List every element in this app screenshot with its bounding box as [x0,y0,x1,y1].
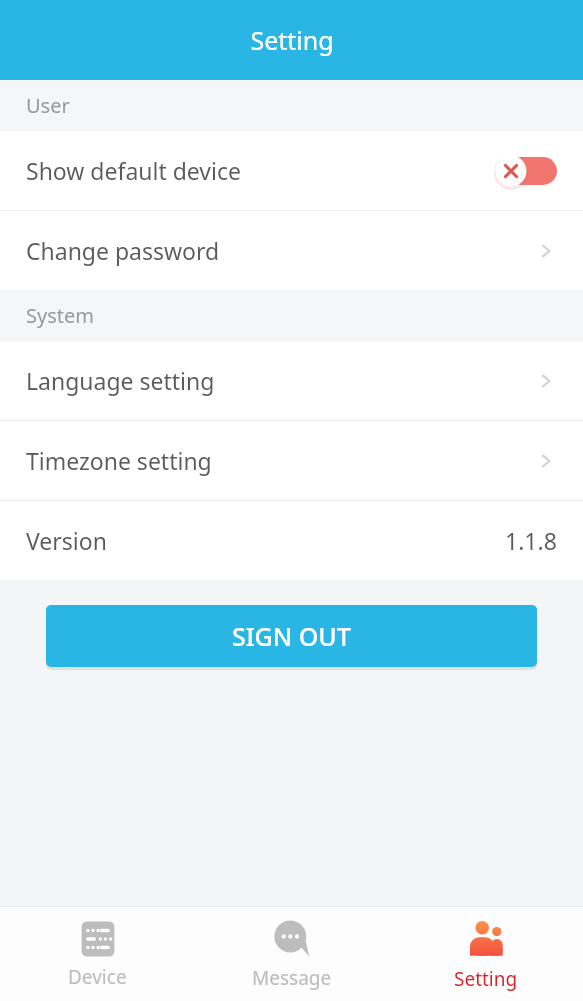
button[interactable]: SIGN OUT [46,605,537,667]
button[interactable]: Show default device toggle [493,154,557,188]
button[interactable]: Show default device [0,131,583,210]
staticText: Message [252,965,332,991]
staticText: SIGN OUT [232,619,351,653]
staticText: Timezone setting [26,445,212,476]
button[interactable]: Timezone setting [0,421,583,500]
staticText: Setting [250,23,334,57]
staticText: System [26,302,94,329]
button[interactable]: Device [0,907,195,1001]
button[interactable]: Language setting [0,341,583,420]
button[interactable]: Version [0,501,583,580]
staticText: Device [68,964,127,990]
staticText: Version [26,525,107,556]
staticText: Setting [454,966,518,992]
staticText: Language setting [26,365,215,396]
staticText: Show default device [26,155,242,186]
staticText: 1.1.8 [505,525,557,556]
staticText: Change password [26,235,220,266]
button[interactable]: Setting [389,907,583,1001]
button[interactable]: Change password [0,211,583,290]
staticText: User [26,92,70,119]
button[interactable]: Message [195,907,389,1001]
